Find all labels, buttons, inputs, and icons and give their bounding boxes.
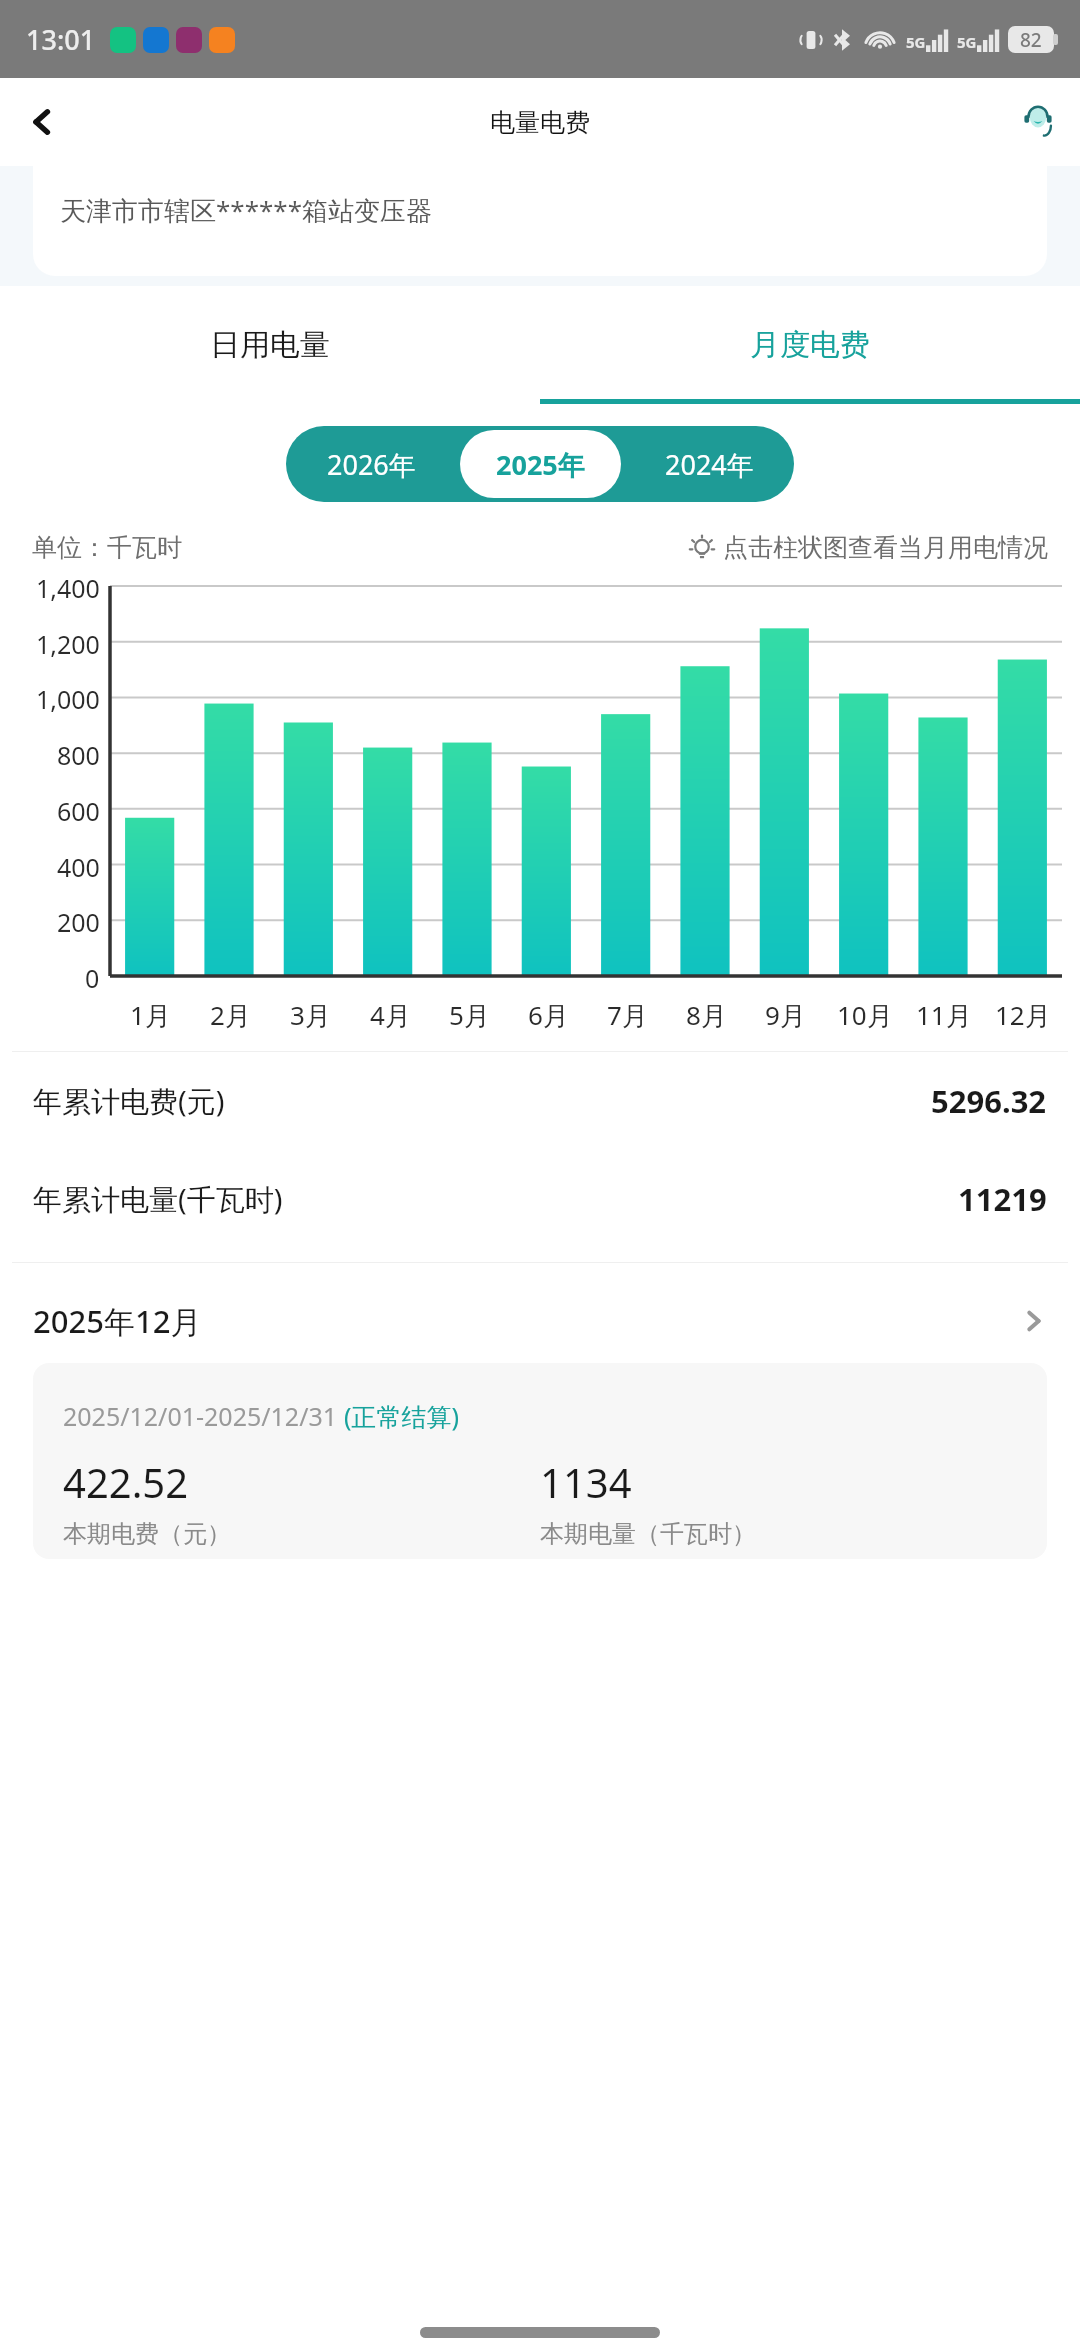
staticText: 3月 bbox=[290, 997, 331, 1033]
staticText: 单位：千瓦时 bbox=[32, 532, 182, 563]
staticText: 2月 bbox=[210, 997, 251, 1033]
button[interactable]: 2026年 bbox=[290, 430, 452, 498]
staticText: 2025年12月 bbox=[33, 1300, 202, 1342]
button[interactable]: 2024年 bbox=[629, 430, 790, 498]
staticText: 422.52 bbox=[63, 1455, 189, 1509]
staticText: 2026年 bbox=[327, 446, 416, 483]
staticText: 1134 bbox=[540, 1455, 632, 1509]
staticText: 5G bbox=[957, 32, 977, 52]
staticText: 2024年 bbox=[665, 446, 754, 483]
button[interactable]: 天津市市辖区******箱站变压器 bbox=[33, 166, 1047, 276]
staticText: 5月 bbox=[449, 997, 490, 1033]
staticText: 600 bbox=[57, 794, 100, 824]
staticText: 2025年 bbox=[496, 446, 585, 483]
staticText: 电量电费 bbox=[490, 107, 590, 138]
staticText: 5296.32 bbox=[931, 1080, 1047, 1122]
staticText: 5G bbox=[906, 32, 926, 52]
staticText: 82 bbox=[1020, 27, 1042, 53]
staticText: 6月 bbox=[528, 997, 569, 1033]
button[interactable]: Customer service bbox=[1010, 94, 1066, 150]
staticText: 年累计电费(元) bbox=[33, 1081, 225, 1121]
staticText: 11219 bbox=[958, 1178, 1047, 1220]
button[interactable]: 年累计电量(千瓦时) bbox=[33, 1150, 1047, 1248]
staticText: 本期电费（元） bbox=[63, 1519, 231, 1549]
button[interactable]: 日用电量 bbox=[0, 286, 540, 404]
staticText: 1月 bbox=[130, 997, 171, 1033]
staticText: 7月 bbox=[607, 997, 648, 1033]
staticText: 9月 bbox=[765, 997, 806, 1033]
staticText: 8月 bbox=[686, 997, 727, 1033]
staticText: 800 bbox=[57, 738, 100, 768]
staticText: 本期电量（千瓦时） bbox=[540, 1519, 756, 1549]
staticText: 1,000 bbox=[36, 682, 100, 712]
button[interactable] bbox=[110, 586, 1062, 976]
button[interactable]: 月度电费 bbox=[540, 286, 1080, 404]
staticText: (正常结算) bbox=[344, 1399, 460, 1433]
staticText: 13:01 bbox=[26, 21, 96, 58]
button[interactable]: 2025年 bbox=[460, 430, 621, 498]
staticText: 200 bbox=[57, 905, 100, 935]
staticText: 天津市市辖区******箱站变压器 bbox=[60, 192, 432, 228]
button[interactable]: 2025年12月 bbox=[33, 1279, 1047, 1363]
staticText: 点击柱状图查看当月用电情况 bbox=[723, 532, 1048, 563]
staticText: 1,400 bbox=[36, 571, 100, 601]
staticText: 0 bbox=[85, 961, 100, 991]
staticText: 12月 bbox=[995, 997, 1051, 1033]
staticText: 年累计电量(千瓦时) bbox=[33, 1179, 283, 1219]
staticText: 月度电费 bbox=[750, 326, 870, 364]
staticText: 2025/12/01-2025/12/31 bbox=[63, 1399, 344, 1433]
button[interactable]: 年累计电费(元) bbox=[33, 1052, 1047, 1150]
staticText: 1,200 bbox=[36, 627, 100, 657]
staticText: 10月 bbox=[837, 997, 893, 1033]
button[interactable]: Back bbox=[14, 94, 70, 150]
staticText: 4月 bbox=[370, 997, 411, 1033]
staticText: 11月 bbox=[916, 997, 972, 1033]
staticText: 日用电量 bbox=[210, 326, 330, 364]
staticText: 400 bbox=[57, 850, 100, 880]
button[interactable]: 2025/12/01-2025/12/31 bbox=[33, 1363, 1047, 1559]
